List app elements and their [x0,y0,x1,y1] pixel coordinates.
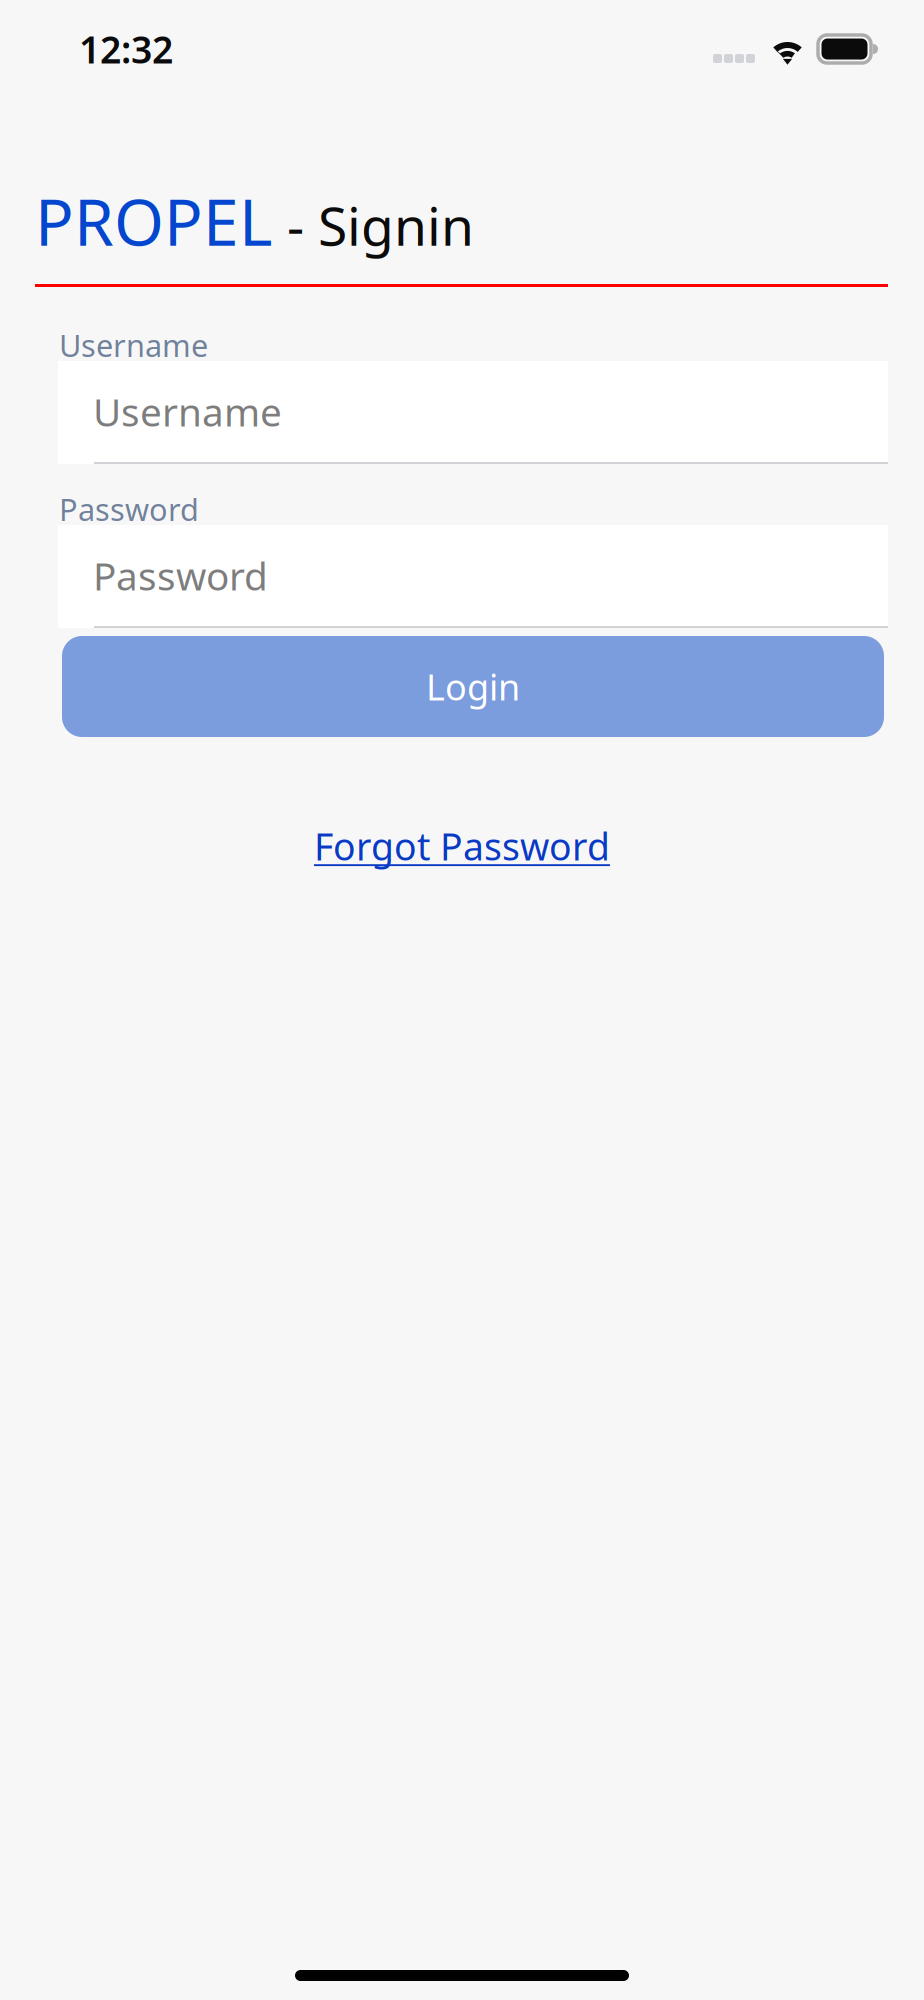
staticText: - Signin [273,190,474,260]
staticText: Username [93,386,282,437]
staticText: Password [93,550,268,601]
button[interactable]: Forgot Password [314,824,610,868]
staticText: Password [59,489,199,529]
staticText: Username [59,325,208,365]
textField[interactable]: Username [93,386,888,437]
staticText: PROPEL [35,178,273,263]
secureTextField[interactable]: Password [93,550,888,601]
staticText: 12:32 [79,24,173,74]
button[interactable]: Login [62,636,884,737]
staticText: Forgot Password [314,821,610,871]
staticText: Login [426,663,520,710]
